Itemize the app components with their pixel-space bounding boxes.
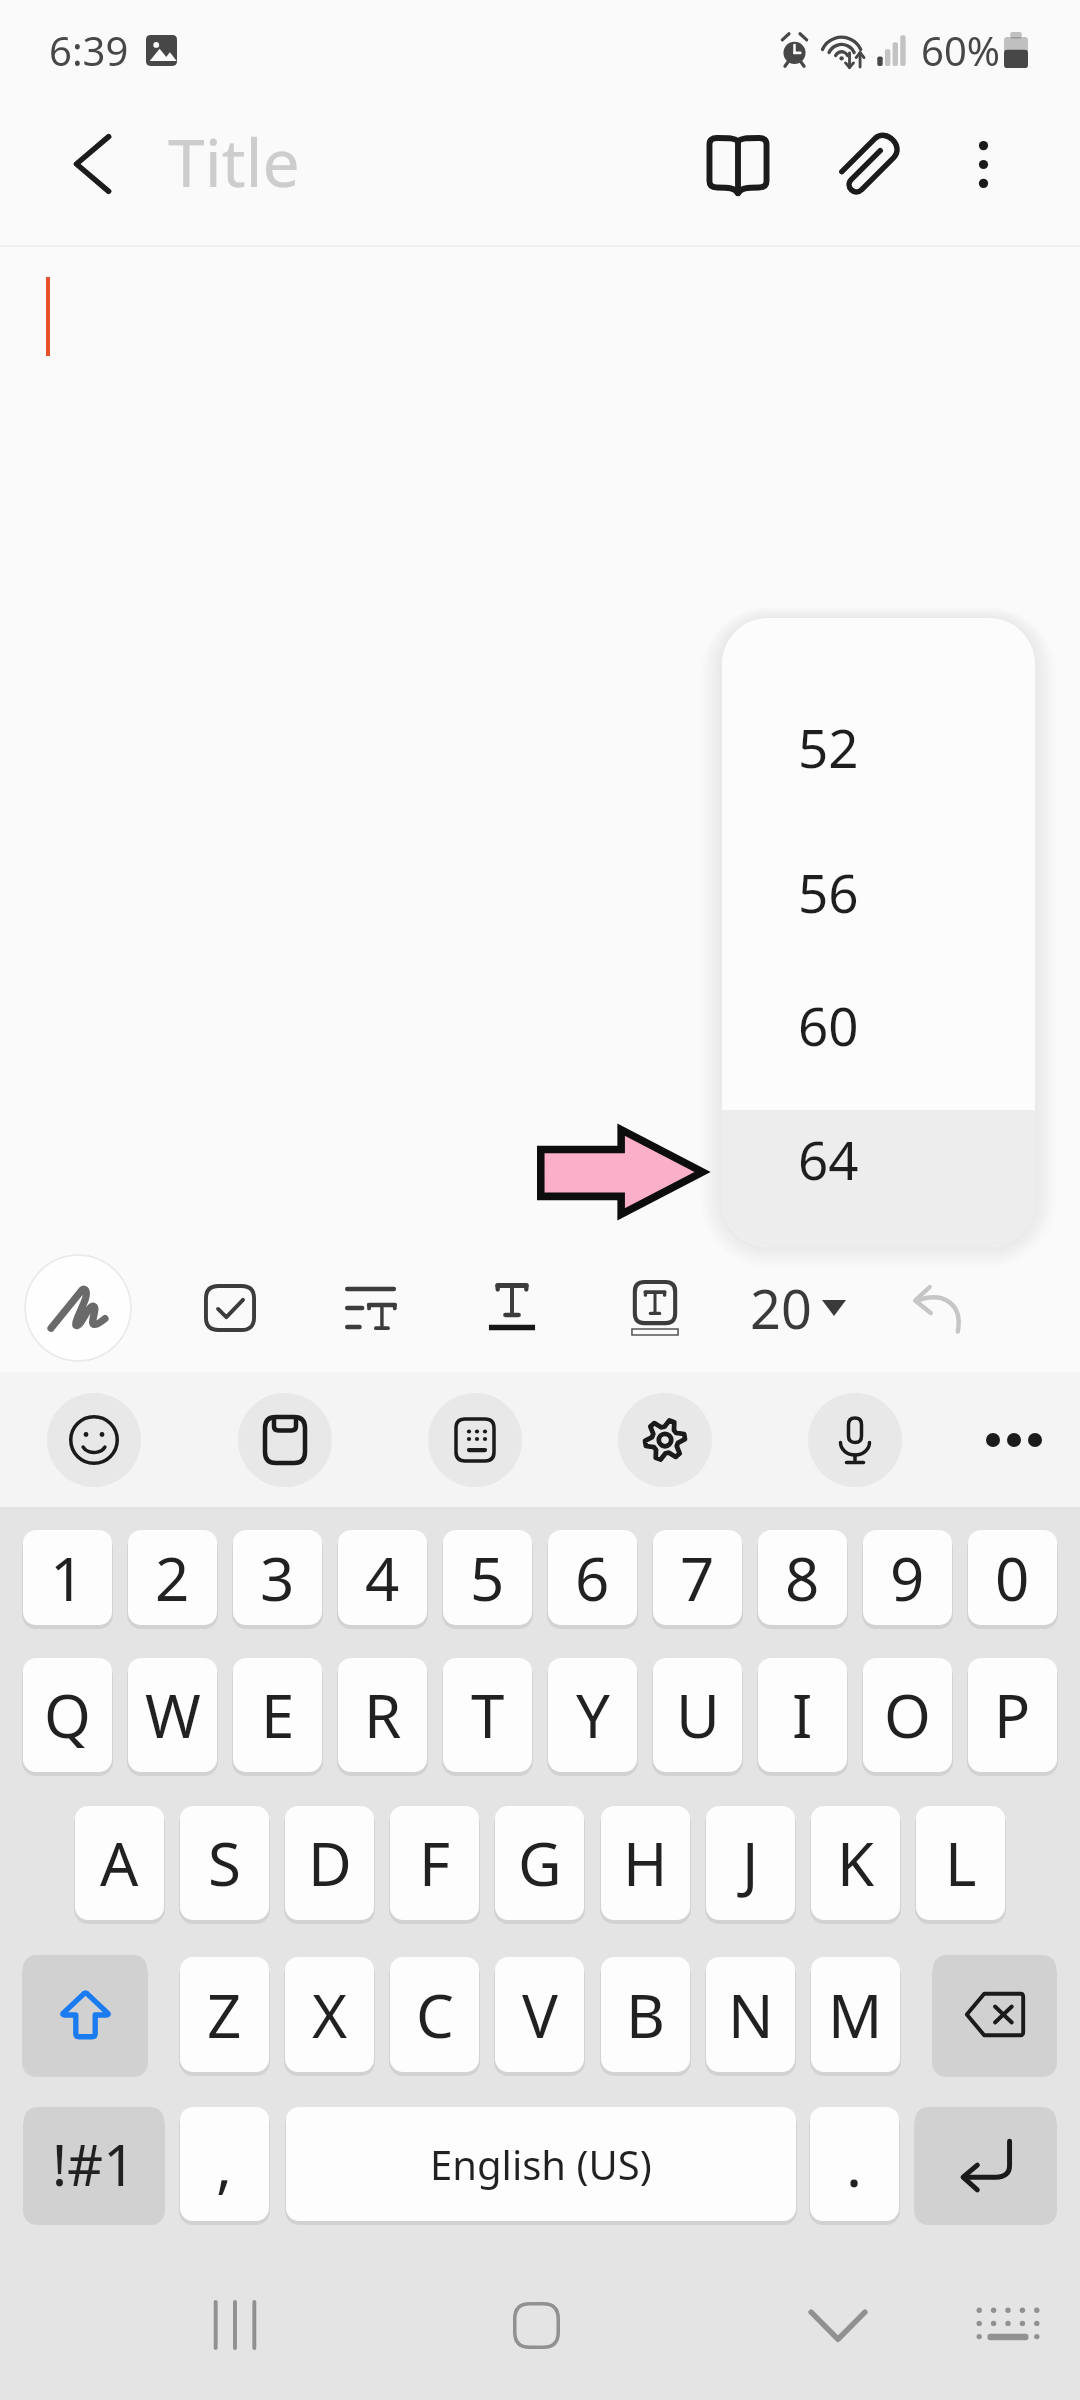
button[interactable]: 56 [722,826,1035,958]
button[interactable]: V [495,1957,584,2072]
staticText: X [312,1974,348,2056]
staticText: D [308,1822,352,1904]
button[interactable]: W [128,1658,217,1772]
button[interactable]: 64 [722,1093,1035,1225]
button[interactable]: More keyboard options [967,1393,1061,1487]
button[interactable]: Q [23,1658,112,1772]
button[interactable]: 5 [443,1530,532,1625]
button[interactable]: N [706,1957,795,2072]
button[interactable]: G [495,1806,584,1920]
staticText: J [742,1822,759,1904]
button[interactable]: Clipboard [238,1393,332,1487]
button[interactable]: Hide keyboard [778,2250,898,2400]
button[interactable]: Checklist [175,1244,285,1372]
button[interactable]: D [285,1806,374,1920]
button[interactable]: F [390,1806,479,1920]
button[interactable]: 3 [233,1530,322,1625]
button[interactable]: I [758,1658,847,1772]
staticText: 0 [995,1537,1030,1619]
button[interactable]: Enter [915,2107,1056,2221]
button[interactable]: Paragraph alignment [316,1244,426,1372]
staticText: 4 [365,1537,400,1619]
staticText: B [626,1974,665,2056]
button[interactable]: 52 [722,681,1035,813]
button[interactable]: Emoji [47,1393,141,1487]
button[interactable]: 8 [758,1530,847,1625]
staticText: F [419,1822,451,1904]
button[interactable]: 60 [722,959,1035,1091]
staticText: 3 [260,1537,295,1619]
staticText: U [676,1674,720,1756]
staticText: 52 [798,711,859,783]
staticText: 2 [155,1537,190,1619]
staticText: English (US) [430,2137,652,2191]
staticText: 7 [680,1537,715,1619]
staticText: Q [44,1674,91,1756]
button[interactable]: Text style [457,1244,567,1372]
button[interactable]: 1 [23,1530,112,1625]
button[interactable]: Change keyboard [948,2250,1068,2400]
button[interactable]: A [75,1806,164,1920]
button[interactable]: Keyboard settings [618,1393,712,1487]
staticText: 60% [921,23,1000,77]
button[interactable]: Recents [175,2250,295,2400]
staticText: K [837,1822,875,1904]
button[interactable]: H [601,1806,690,1920]
staticText: 60 [798,989,859,1061]
button[interactable]: Shift [23,1955,147,2073]
staticText: T [471,1674,505,1756]
button[interactable]: Z [180,1957,269,2072]
button[interactable]: U [653,1658,742,1772]
button[interactable]: Navigate up [33,104,153,224]
staticText: G [518,1822,562,1904]
staticText: !#1 [52,2126,136,2202]
button[interactable]: Reading mode [678,104,798,224]
button[interactable]: P [968,1658,1057,1772]
staticText: . [846,2123,863,2205]
button[interactable]: Handwriting [24,1254,132,1362]
button[interactable]: Space [286,2107,796,2221]
staticText: Title [168,116,300,206]
button[interactable]: 7 [653,1530,742,1625]
button[interactable]: 0 [968,1530,1057,1625]
button[interactable]: 9 [863,1530,952,1625]
button[interactable]: J [706,1806,795,1920]
button[interactable]: . [810,2107,899,2221]
button[interactable]: 4 [338,1530,427,1625]
staticText: , [216,2123,233,2205]
button[interactable]: Attach file [810,104,930,224]
button[interactable]: 20 [750,1253,846,1363]
button[interactable]: Text box [600,1244,710,1372]
button[interactable]: Symbols [24,2107,164,2221]
button[interactable]: Keyboard layout [428,1393,522,1487]
button[interactable]: X [285,1957,374,2072]
button[interactable]: S [180,1806,269,1920]
button[interactable]: M [811,1957,900,2072]
button[interactable]: Undo [882,1244,992,1372]
button[interactable]: Y [548,1658,637,1772]
button[interactable]: 6 [548,1530,637,1625]
staticText: 1 [50,1537,85,1619]
button[interactable]: More options [923,104,1043,224]
button[interactable]: , [180,2107,269,2221]
staticText: 20 [750,1271,812,1345]
button[interactable]: B [601,1957,690,2072]
button[interactable]: Backspace [933,1955,1056,2073]
button[interactable]: T [443,1658,532,1772]
staticText: E [261,1674,295,1756]
button[interactable]: L [916,1806,1005,1920]
staticText: H [623,1822,668,1904]
button[interactable]: O [863,1658,952,1772]
button[interactable]: Home [476,2250,596,2400]
staticText: Z [207,1974,242,2056]
staticText: A [100,1822,139,1904]
button[interactable]: 2 [128,1530,217,1625]
button[interactable]: Voice input [808,1393,902,1487]
staticText: I [792,1674,813,1756]
button[interactable]: E [233,1658,322,1772]
staticText: 6 [575,1537,610,1619]
button[interactable]: K [811,1806,900,1920]
staticText: 64 [798,1123,859,1195]
button[interactable]: C [390,1957,479,2072]
button[interactable]: R [338,1658,427,1772]
